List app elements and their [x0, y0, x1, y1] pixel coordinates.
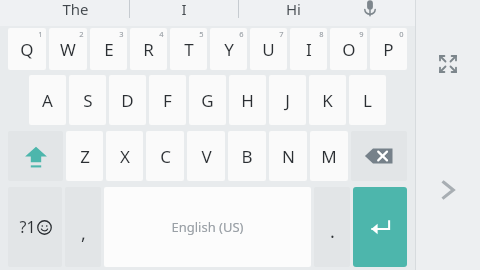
staticText: 8 [319, 29, 324, 39]
button[interactable]: F [149, 75, 186, 125]
staticText: J [285, 89, 290, 112]
button[interactable]: Y [210, 28, 247, 70]
button[interactable]: K [309, 75, 346, 125]
staticText: Z [80, 145, 90, 168]
staticText: O [342, 38, 356, 61]
staticText: P [383, 38, 394, 61]
staticText: I [181, 0, 187, 19]
button[interactable]: R [130, 28, 167, 70]
button[interactable]: Backspace [351, 131, 407, 181]
button[interactable]: E [90, 28, 127, 70]
staticText: X [120, 145, 130, 168]
button[interactable]: Q [8, 28, 46, 70]
staticText: , [81, 221, 86, 246]
button[interactable]: Hi [239, 0, 347, 26]
staticText: L [363, 89, 372, 112]
button[interactable]: G [189, 75, 226, 125]
staticText: 2 [79, 29, 84, 39]
button[interactable]: I [290, 28, 327, 70]
button[interactable]: D [109, 75, 146, 125]
staticText: B [241, 145, 253, 168]
staticText: Q [20, 38, 34, 61]
button[interactable]: B [228, 131, 266, 181]
button[interactable]: Next [426, 168, 470, 212]
staticText: 7 [279, 29, 284, 39]
button[interactable]: U [250, 28, 287, 70]
button[interactable]: . [314, 187, 350, 267]
staticText: C [160, 145, 171, 168]
button[interactable]: O [330, 28, 367, 70]
button[interactable]: L [349, 75, 386, 125]
staticText: Hi [286, 0, 301, 19]
staticText: 3 [119, 29, 124, 39]
button[interactable]: , [65, 187, 101, 267]
button[interactable]: J [269, 75, 306, 125]
button[interactable]: P [370, 28, 407, 70]
button[interactable]: Z [66, 131, 103, 181]
button[interactable]: N [269, 131, 307, 181]
staticText: 9 [359, 29, 364, 39]
staticText: F [163, 89, 172, 112]
staticText: D [121, 89, 134, 112]
staticText: T [184, 38, 194, 61]
button[interactable]: H [229, 75, 266, 125]
button[interactable]: W [49, 28, 87, 70]
staticText: 6 [239, 29, 244, 39]
staticText: U [262, 38, 275, 61]
button[interactable]: S [69, 75, 106, 125]
staticText: 0 [399, 29, 404, 39]
button[interactable]: V [187, 131, 225, 181]
button[interactable]: Shift [8, 131, 63, 181]
staticText: M [321, 145, 337, 168]
button[interactable]: The [22, 0, 129, 26]
button[interactable]: X [106, 131, 143, 181]
staticText: H [241, 89, 254, 112]
staticText: N [282, 145, 295, 168]
button[interactable]: C [146, 131, 184, 181]
staticText: ?1 [19, 216, 36, 238]
button[interactable]: Enter [353, 187, 407, 267]
staticText: E [104, 38, 114, 61]
staticText: A [42, 89, 53, 112]
staticText: English (US) [171, 218, 244, 236]
button[interactable]: I [130, 0, 238, 26]
staticText: R [143, 38, 154, 61]
staticText: V [201, 145, 212, 168]
button[interactable]: M [310, 131, 348, 181]
staticText: W [60, 38, 76, 61]
button[interactable]: A [29, 75, 66, 125]
staticText: 1 [38, 29, 43, 39]
staticText: 5 [199, 29, 204, 39]
button[interactable]: Fullscreen [428, 44, 468, 84]
staticText: 4 [159, 29, 164, 39]
staticText: G [201, 89, 214, 112]
button[interactable]: English (US) [104, 187, 311, 267]
staticText: S [83, 89, 93, 112]
button[interactable]: T [170, 28, 207, 70]
button[interactable]: ?1 [8, 187, 62, 267]
staticText: . [330, 219, 335, 244]
staticText: I [306, 38, 312, 61]
staticText: Y [224, 38, 234, 61]
staticText: The [62, 0, 89, 19]
staticText: K [322, 89, 333, 112]
button[interactable]: Voice input [347, 0, 393, 26]
